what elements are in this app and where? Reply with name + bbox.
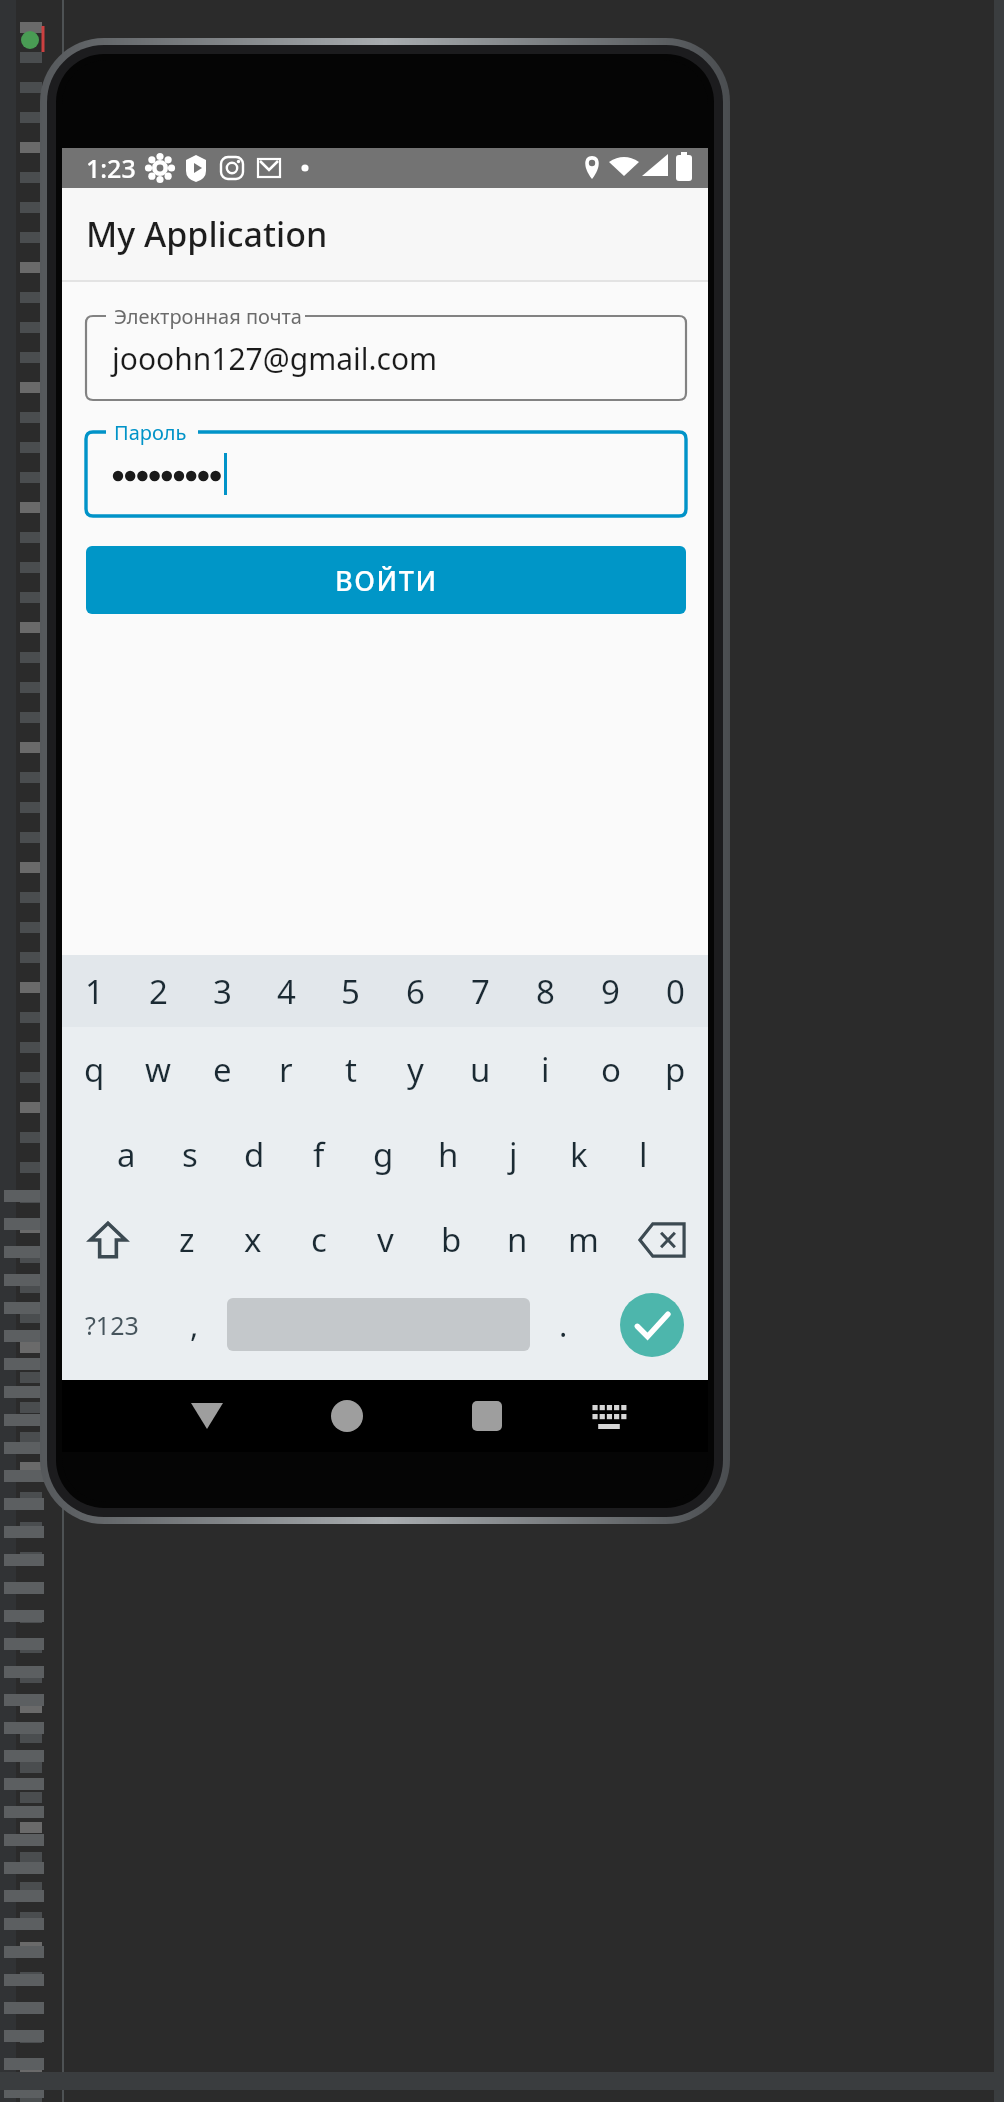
button[interactable]: t	[318, 1027, 383, 1112]
staticText: ?123	[85, 1308, 139, 1342]
staticText: 4	[277, 969, 296, 1014]
button[interactable]: 4	[254, 955, 318, 1027]
button[interactable]: s	[158, 1112, 222, 1197]
button[interactable]: ,	[161, 1282, 227, 1367]
button[interactable]: j	[481, 1112, 546, 1197]
staticText: 0	[666, 969, 685, 1014]
staticText: s	[182, 1132, 198, 1177]
button[interactable]: 5	[318, 955, 383, 1027]
staticText: 5	[341, 969, 360, 1014]
button[interactable]: o	[578, 1027, 643, 1112]
button[interactable]: r	[254, 1027, 318, 1112]
button[interactable]: b	[418, 1197, 484, 1282]
staticText: u	[470, 1047, 491, 1092]
button[interactable]: u	[448, 1027, 513, 1112]
staticText: c	[311, 1217, 327, 1262]
button[interactable]: 8	[513, 955, 578, 1027]
staticText: g	[373, 1132, 394, 1177]
button[interactable]: .	[530, 1282, 596, 1367]
staticText: 1	[85, 969, 104, 1014]
staticText: r	[279, 1047, 293, 1092]
button[interactable]: 9	[578, 955, 643, 1027]
staticText: 8	[536, 969, 555, 1014]
staticText: ,	[190, 1304, 199, 1346]
staticText: 2	[149, 969, 168, 1014]
staticText: 3	[213, 969, 232, 1014]
button[interactable]: i	[513, 1027, 578, 1112]
staticText: x	[244, 1217, 262, 1262]
button[interactable]: f	[286, 1112, 351, 1197]
staticText: l	[639, 1132, 648, 1177]
button[interactable]: Home	[302, 1380, 392, 1452]
staticText: n	[507, 1217, 528, 1262]
button[interactable]: Enter	[596, 1282, 708, 1367]
button[interactable]: 0	[643, 955, 708, 1027]
staticText: Пароль	[114, 419, 187, 446]
button[interactable]: h	[416, 1112, 481, 1197]
button[interactable]: x	[220, 1197, 286, 1282]
button[interactable]: Пароль	[86, 432, 686, 516]
staticText: w	[145, 1047, 171, 1092]
button[interactable]: Backspace	[616, 1197, 708, 1282]
button[interactable]: 7	[448, 955, 513, 1027]
staticText: ВОЙТИ	[335, 562, 438, 599]
staticText: 9	[601, 969, 620, 1014]
staticText: p	[665, 1047, 686, 1092]
button[interactable]: v	[352, 1197, 418, 1282]
staticText: f	[313, 1132, 325, 1177]
staticText: b	[441, 1217, 462, 1262]
button[interactable]: g	[351, 1112, 416, 1197]
staticText: e	[213, 1047, 232, 1092]
staticText: jooohn127@gmail.com	[112, 338, 438, 379]
staticText: 7	[471, 969, 490, 1014]
button[interactable]: Электронная почта	[86, 316, 686, 400]
staticText: q	[84, 1047, 105, 1092]
staticText: h	[438, 1132, 459, 1177]
button[interactable]: e	[190, 1027, 254, 1112]
staticText: y	[407, 1047, 424, 1092]
button[interactable]: 1	[62, 955, 126, 1027]
button[interactable]: l	[611, 1112, 676, 1197]
staticText: o	[601, 1047, 621, 1092]
button[interactable]: d	[222, 1112, 286, 1197]
button[interactable]: ВОЙТИ	[86, 546, 686, 614]
staticText: i	[541, 1047, 550, 1092]
staticText: v	[377, 1217, 394, 1262]
button[interactable]: k	[546, 1112, 611, 1197]
staticText: m	[568, 1217, 599, 1262]
staticText: j	[509, 1132, 518, 1177]
button[interactable]: Shift	[62, 1197, 154, 1282]
staticText: .	[559, 1304, 568, 1346]
button[interactable]: 2	[126, 955, 190, 1027]
staticText: a	[117, 1132, 136, 1177]
button[interactable]: m	[550, 1197, 616, 1282]
button[interactable]: z	[154, 1197, 220, 1282]
button[interactable]: n	[484, 1197, 550, 1282]
button[interactable]: Back	[162, 1380, 252, 1452]
button[interactable]: ?123	[62, 1282, 161, 1367]
staticText: k	[570, 1132, 588, 1177]
staticText: Электронная почта	[114, 303, 302, 330]
button[interactable]: p	[643, 1027, 708, 1112]
button[interactable]: q	[62, 1027, 126, 1112]
button[interactable]: y	[383, 1027, 448, 1112]
staticText: My Application	[86, 211, 328, 257]
button[interactable]: 6	[383, 955, 448, 1027]
button[interactable]: 3	[190, 955, 254, 1027]
staticText: t	[345, 1047, 357, 1092]
staticText: z	[179, 1217, 195, 1262]
button[interactable]: w	[126, 1027, 190, 1112]
button[interactable]: c	[286, 1197, 352, 1282]
staticText: 1:23	[86, 151, 136, 185]
staticText: 6	[406, 969, 425, 1014]
staticText: d	[244, 1132, 265, 1177]
button[interactable]: Recents	[442, 1380, 532, 1452]
button[interactable]: a	[94, 1112, 158, 1197]
button[interactable]: Switch keyboard	[564, 1380, 654, 1452]
